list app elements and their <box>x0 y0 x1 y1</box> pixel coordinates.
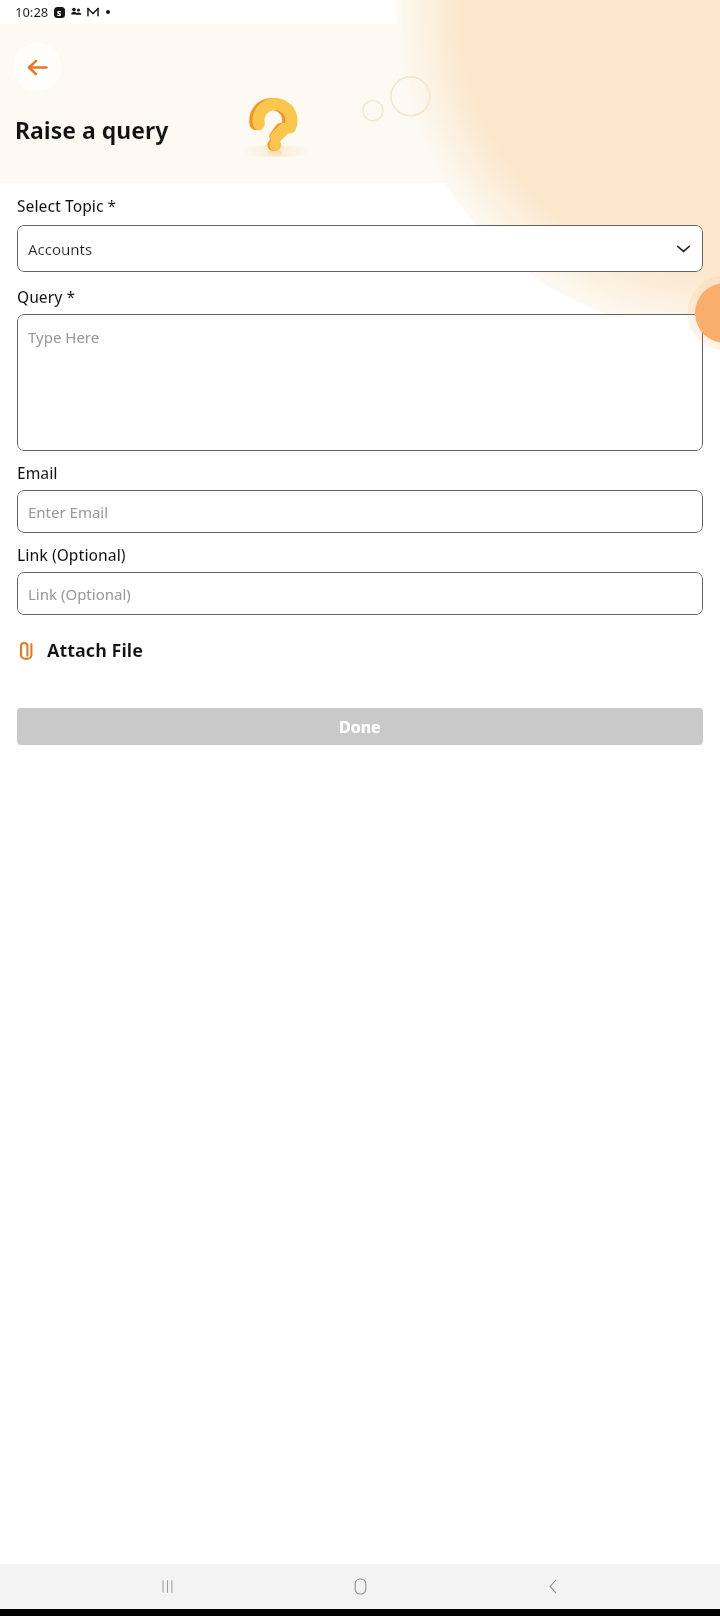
button[interactable]: Type Here <box>17 314 703 451</box>
staticText: Link (Optional) <box>17 544 126 565</box>
staticText: S <box>57 8 62 18</box>
button[interactable]: Home <box>334 1564 386 1609</box>
staticText: Type Here <box>28 327 100 347</box>
staticText: Link (Optional) <box>28 584 131 604</box>
staticText: 10:28 <box>15 3 49 21</box>
staticText: Select Topic * <box>17 195 117 216</box>
staticText: Query * <box>17 286 76 307</box>
staticText: Accounts <box>28 239 93 259</box>
staticText: Email <box>17 462 58 483</box>
button[interactable]: Done <box>17 708 703 745</box>
staticText: Raise a query <box>15 114 169 145</box>
staticText: Attach File <box>47 638 143 663</box>
staticText: Done <box>339 716 381 738</box>
button[interactable]: Attach File <box>17 636 143 665</box>
button[interactable]: Back <box>527 1564 579 1609</box>
staticText: Enter Email <box>28 502 109 522</box>
button[interactable]: Link (Optional) <box>17 572 703 615</box>
button[interactable]: Accounts <box>17 225 703 272</box>
button[interactable]: Recent apps <box>141 1564 193 1609</box>
button[interactable]: Back <box>13 43 61 91</box>
button[interactable]: Enter Email <box>17 490 703 533</box>
